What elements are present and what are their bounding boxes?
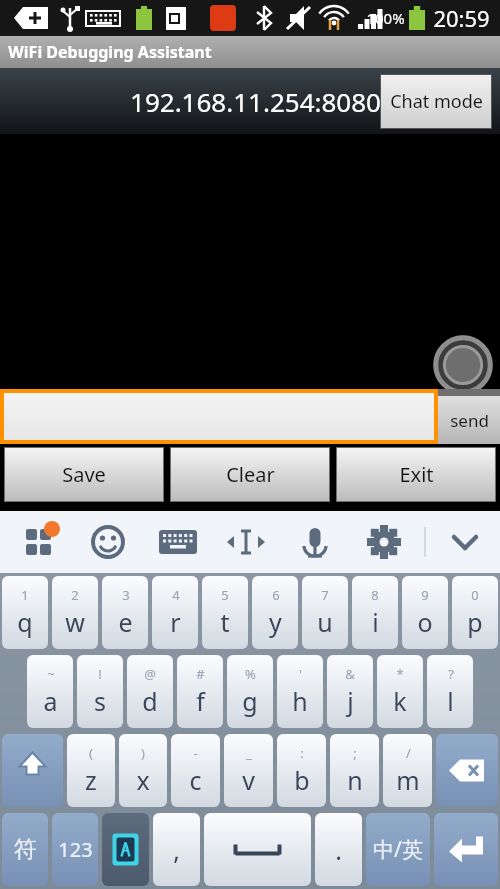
button[interactable]: ,	[153, 813, 200, 886]
button[interactable]: 123	[52, 813, 98, 886]
button[interactable]: 9	[402, 576, 448, 649]
button[interactable]: 3	[102, 576, 148, 649]
button[interactable]: send	[438, 396, 500, 444]
staticText: Chat mode	[390, 89, 483, 114]
button[interactable]: 4	[152, 576, 198, 649]
button[interactable]: Space	[204, 813, 311, 886]
staticText: v	[242, 763, 255, 797]
staticText: q	[17, 605, 33, 639]
staticText: WiFi Debugging Assistant	[8, 41, 212, 63]
button[interactable]: Hide keyboard	[440, 511, 500, 573]
button[interactable]: !	[77, 655, 123, 728]
other: Speaker	[432, 334, 494, 396]
button[interactable]: Enter	[434, 813, 498, 886]
staticText: ,	[173, 833, 180, 867]
button[interactable]: %	[227, 655, 273, 728]
button[interactable]: Cursor	[207, 511, 276, 573]
staticText: )	[141, 744, 145, 762]
button[interactable]: (	[67, 734, 115, 807]
staticText: x	[136, 763, 150, 797]
staticText: '	[299, 665, 302, 683]
button[interactable]: 符	[2, 813, 48, 886]
staticText: #	[196, 665, 205, 683]
button[interactable]: Keyboard	[138, 511, 207, 573]
button[interactable]: Chat mode	[381, 75, 491, 128]
button[interactable]: 8	[352, 576, 398, 649]
button[interactable]: *	[377, 655, 423, 728]
staticText: n	[347, 763, 363, 797]
button[interactable]: )	[119, 734, 167, 807]
button[interactable]: @	[127, 655, 173, 728]
button[interactable]: &	[327, 655, 373, 728]
staticText: 3	[122, 586, 130, 604]
button[interactable]	[4, 393, 434, 440]
staticText: _	[246, 744, 252, 762]
staticText: h	[292, 684, 308, 718]
button[interactable]: Emoji	[69, 511, 138, 573]
button[interactable]: Input method	[102, 813, 149, 886]
staticText: u	[317, 605, 333, 639]
staticText: t	[220, 605, 230, 639]
staticText: 7	[321, 586, 329, 604]
staticText: p	[467, 605, 483, 639]
staticText: :	[300, 744, 304, 762]
staticText: i	[372, 605, 379, 639]
staticText: 0	[471, 586, 479, 604]
button[interactable]: 7	[302, 576, 348, 649]
staticText: e	[118, 605, 133, 639]
button[interactable]: ?	[427, 655, 473, 728]
staticText: *	[396, 665, 404, 683]
staticText: 6	[272, 586, 280, 604]
staticText: %	[245, 665, 256, 683]
staticText: r	[170, 605, 181, 639]
button[interactable]: #	[177, 655, 223, 728]
staticText: .	[335, 833, 342, 867]
staticText: o	[417, 605, 433, 639]
button[interactable]: 1	[2, 576, 48, 649]
staticText: Exit	[399, 461, 434, 488]
button[interactable]: Backspace	[436, 734, 498, 807]
staticText: m	[396, 763, 420, 797]
staticText: Save	[62, 461, 106, 488]
staticText: k	[393, 684, 407, 718]
button[interactable]: Settings	[345, 511, 414, 573]
button[interactable]: Exit	[337, 448, 495, 501]
button[interactable]: .	[315, 813, 362, 886]
staticText: 100%	[366, 8, 405, 28]
staticText: 中/英	[373, 835, 423, 864]
staticText: j	[347, 684, 354, 718]
button[interactable]: 0	[452, 576, 498, 649]
button[interactable]: 2	[52, 576, 98, 649]
staticText: 1	[21, 586, 29, 604]
staticText: 4	[172, 586, 180, 604]
staticText: 123	[58, 836, 93, 863]
staticText: w	[65, 605, 85, 639]
button[interactable]: Voice input	[276, 511, 345, 573]
button[interactable]: -	[171, 734, 220, 807]
staticText: c	[189, 763, 202, 797]
button[interactable]: Clear	[171, 448, 329, 501]
button[interactable]: _	[224, 734, 273, 807]
button[interactable]: /	[383, 734, 432, 807]
staticText: (	[89, 744, 93, 762]
button[interactable]: Save	[5, 448, 163, 501]
staticText: &	[345, 665, 355, 683]
staticText: d	[142, 684, 158, 718]
button[interactable]: '	[277, 655, 323, 728]
staticText: 9	[421, 586, 429, 604]
button[interactable]: 5	[202, 576, 248, 649]
button[interactable]: ;	[330, 734, 379, 807]
staticText: Clear	[226, 461, 275, 488]
staticText: 5	[221, 586, 229, 604]
button[interactable]: 6	[252, 576, 298, 649]
button[interactable]: 中/英	[366, 813, 430, 886]
staticText: 符	[14, 835, 37, 864]
button[interactable]: Apps	[0, 511, 69, 573]
button[interactable]: Shift	[2, 734, 63, 807]
staticText: ;	[353, 744, 357, 762]
staticText: !	[98, 665, 102, 683]
button[interactable]: ~	[27, 655, 73, 728]
button[interactable]: :	[277, 734, 326, 807]
staticText: send	[450, 409, 489, 432]
staticText: 20:59	[433, 3, 490, 33]
